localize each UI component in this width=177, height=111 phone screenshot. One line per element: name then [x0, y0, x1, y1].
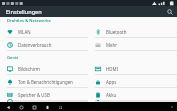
button[interactable]: Mehr: [88, 38, 177, 51]
staticText: Apps: [106, 79, 117, 85]
button[interactable]: Menü: [56, 103, 64, 111]
staticText: Akku: [106, 92, 117, 98]
staticText: WLAN: [18, 29, 31, 35]
button[interactable]: Speicher: [0, 101, 88, 102]
button[interactable]: Screenshot: [43, 103, 51, 111]
button[interactable]: Datenverbrauch: [0, 38, 88, 51]
button[interactable]: HDMI: [88, 62, 177, 75]
staticText: HDMI: [106, 66, 118, 72]
button[interactable]: WLAN: [0, 25, 88, 38]
staticText: Mehr: [106, 42, 117, 48]
staticText: Bluetooth: [106, 29, 127, 35]
staticText: Bildschirm: [18, 66, 40, 72]
staticText: Ton & Benachrichtigungen: [18, 79, 73, 85]
button[interactable]: Übersicht: [30, 103, 38, 111]
staticText: Speicher & USB: [18, 92, 50, 98]
button[interactable]: Bildschirm: [0, 62, 88, 75]
button[interactable]: Bluetooth: [88, 25, 177, 38]
button[interactable]: Suchen: [164, 6, 175, 17]
staticText: Gerät: [7, 55, 19, 61]
staticText: Drahtlos & Netzwerke: [7, 18, 51, 24]
button[interactable]: Apps: [88, 75, 177, 88]
staticText: Datenverbrauch: [18, 42, 52, 48]
button[interactable]: Nutzer: [88, 101, 177, 102]
button[interactable]: Ton & Benachrichtigungen: [0, 75, 88, 88]
button[interactable]: Startbildschirm: [17, 103, 25, 111]
staticText: Einstellungen: [6, 8, 42, 16]
button[interactable]: Akku: [88, 88, 177, 101]
button[interactable]: Zurück: [4, 103, 12, 111]
button[interactable]: Speicher & USB: [0, 88, 88, 101]
